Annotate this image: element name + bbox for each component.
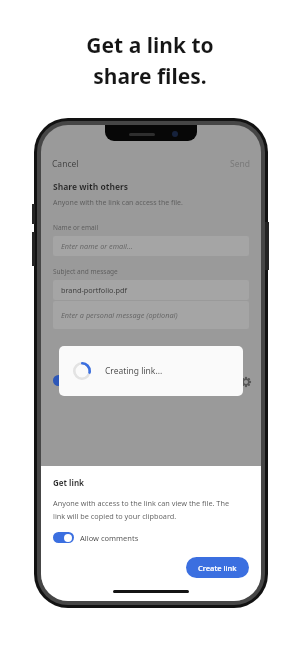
staticText: Enter a personal message (optional) [61, 310, 178, 320]
staticText: Name or email [53, 223, 99, 232]
staticText: Get a link to [86, 31, 214, 60]
staticText: Share with others [53, 181, 129, 193]
button[interactable] [53, 375, 73, 386]
staticText: Get link [53, 477, 85, 488]
staticText: Cancel [52, 158, 79, 170]
button[interactable]: Cancel [49, 155, 82, 173]
button[interactable]: Enter name or email... [53, 236, 249, 256]
button[interactable]: Allow comments [53, 532, 139, 543]
staticText: share files. [93, 62, 207, 91]
staticText: Create link [198, 563, 237, 573]
button[interactable]: Enter a personal message (optional) [53, 301, 249, 329]
button[interactable]: Send [227, 155, 253, 173]
staticText: Enter name or email... [61, 241, 133, 251]
button[interactable]: brand-portfolio.pdf [53, 280, 249, 300]
staticText: Anyone with access to the link can view … [53, 498, 230, 508]
button[interactable]: Create link [186, 557, 249, 578]
staticText: Subject and message [53, 267, 118, 276]
staticText: Creating link... [105, 365, 163, 377]
staticText: link will be copied to your clipboard. [53, 511, 177, 521]
staticText: brand-portfolio.pdf [61, 285, 127, 295]
staticText: Send [230, 158, 250, 170]
staticText: Anyone with the link can access the file… [53, 198, 183, 208]
staticText: Allow comments [80, 533, 139, 543]
other: Settings [241, 377, 251, 387]
